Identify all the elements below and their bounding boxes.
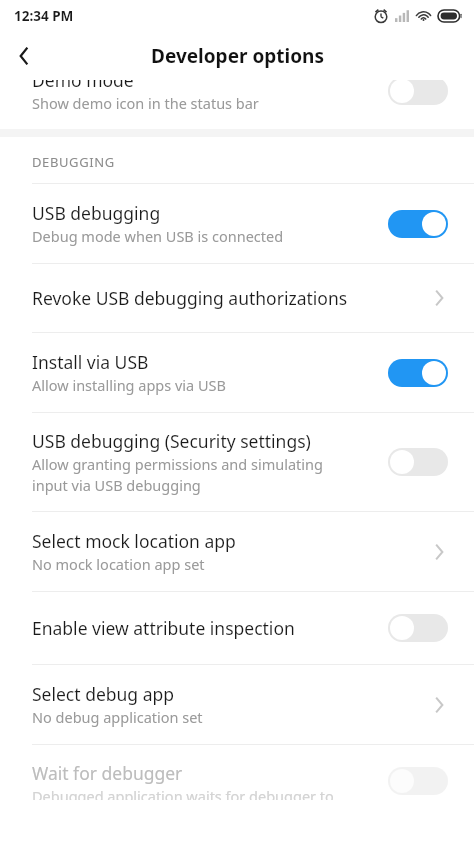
staticText: USB debugging: [32, 201, 161, 225]
staticText: Show demo icon in the status bar: [32, 93, 259, 113]
button[interactable]: Enable view attribute inspection: [0, 592, 474, 664]
staticText: Demo mode: [32, 80, 134, 92]
button[interactable]: Back: [0, 32, 48, 80]
staticText: Developer options: [151, 43, 324, 69]
staticText: 12:34 PM: [14, 7, 74, 25]
staticText: Install via USB: [32, 350, 149, 374]
staticText: Debug mode when USB is connected: [32, 226, 284, 246]
button[interactable]: Select mock location app: [0, 512, 474, 591]
staticText: No debug application set: [32, 707, 203, 727]
button[interactable]: USB debugging (Security settings): [0, 413, 474, 511]
staticText: Debugged application waits for debugger …: [32, 786, 334, 800]
staticText: DEBUGGING: [32, 153, 115, 171]
staticText: Select mock location app: [32, 529, 236, 553]
staticText: Allow granting permissions and simulatin…: [32, 454, 323, 474]
button[interactable]: USB debugging: [0, 184, 474, 263]
staticText: Allow installing apps via USB: [32, 375, 226, 395]
button[interactable]: Revoke USB debugging authorizations: [0, 264, 474, 332]
staticText: Revoke USB debugging authorizations: [32, 286, 348, 310]
staticText: Select debug app: [32, 682, 174, 706]
button[interactable]: Wait for debugger: [0, 745, 474, 816]
button[interactable]: Install via USB: [0, 333, 474, 412]
staticText: Enable view attribute inspection: [32, 616, 295, 640]
staticText: Wait for debugger: [32, 761, 183, 785]
staticText: USB debugging (Security settings): [32, 429, 311, 453]
staticText: input via USB debugging: [32, 475, 201, 495]
button[interactable]: Select debug app: [0, 665, 474, 744]
staticText: No mock location app set: [32, 554, 205, 574]
button[interactable]: Demo mode: [0, 80, 474, 129]
